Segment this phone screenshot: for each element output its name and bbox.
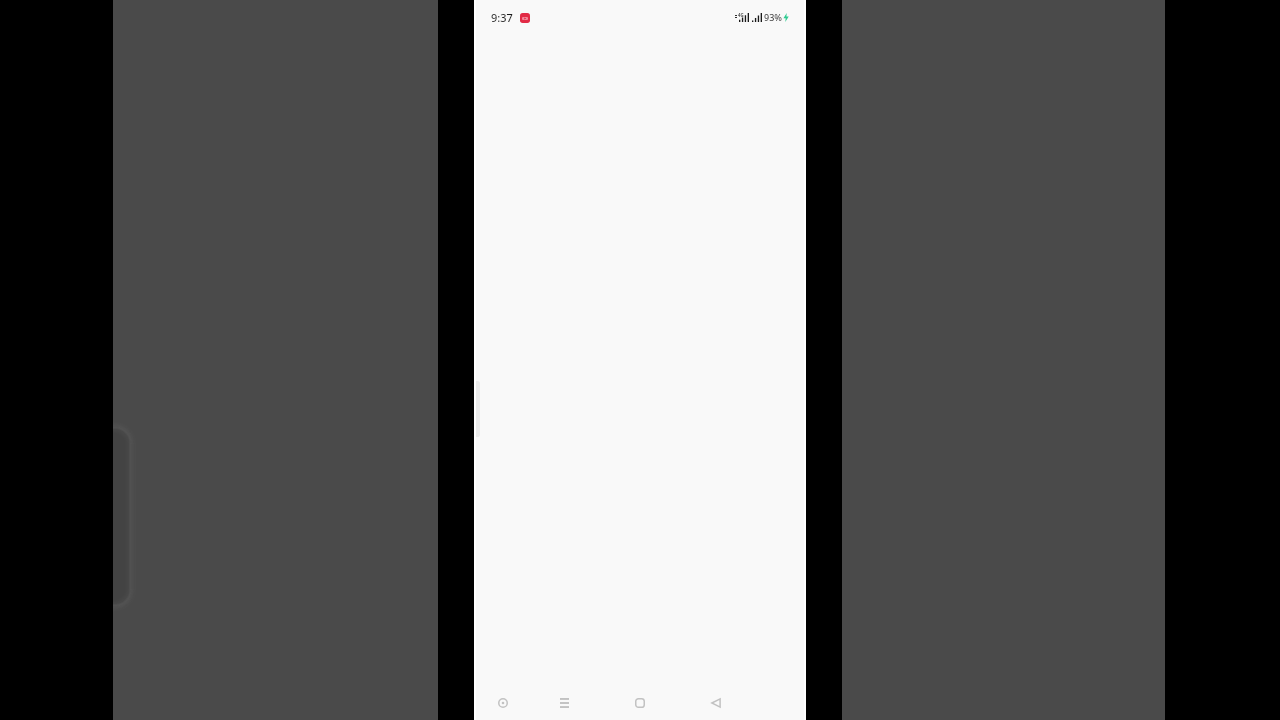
staticText: 93% — [764, 11, 782, 23]
staticText: 4G — [738, 12, 744, 18]
button[interactable]: Recents — [623, 686, 657, 720]
button[interactable]: Screenshot — [486, 686, 520, 720]
button[interactable]: Back — [699, 686, 733, 720]
button[interactable]: Menu — [547, 686, 581, 720]
staticText: 9:37 — [491, 10, 513, 25]
